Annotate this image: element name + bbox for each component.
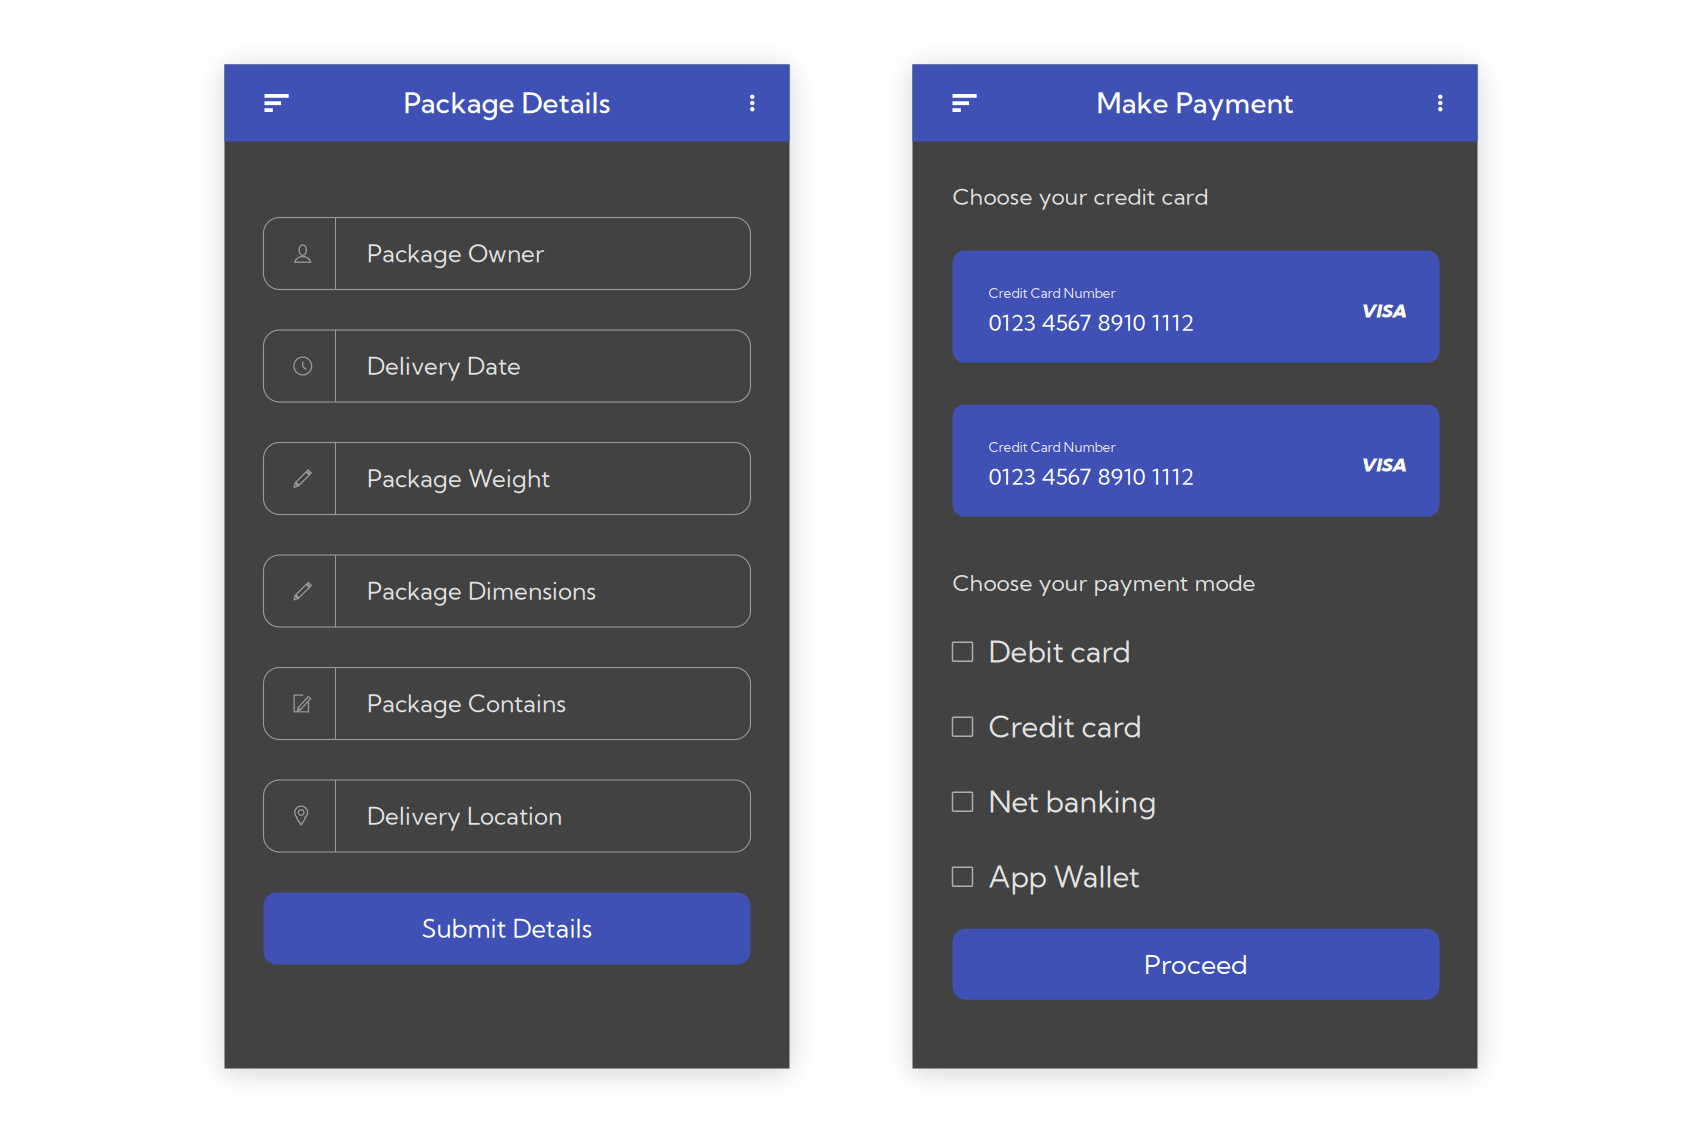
staticText: Package Weight bbox=[367, 464, 550, 493]
staticText: Submit Details bbox=[421, 913, 592, 944]
staticText: Delivery Location bbox=[367, 801, 562, 831]
staticText: Proceed bbox=[1144, 948, 1248, 981]
button[interactable]: Debit card bbox=[952, 632, 1439, 672]
staticText: Package Owner bbox=[367, 239, 544, 268]
staticText: Package Contains bbox=[367, 689, 566, 718]
staticText: Package Dimensions bbox=[367, 576, 596, 606]
staticText: Delivery Date bbox=[367, 351, 521, 381]
button[interactable]: More options bbox=[728, 64, 789, 141]
button[interactable]: Credit Card Number bbox=[952, 251, 1439, 363]
staticText: App Wallet bbox=[988, 858, 1139, 895]
button[interactable]: Package Dimensions bbox=[263, 555, 750, 627]
staticText: 0123 4567 8910 1112 bbox=[988, 462, 1194, 490]
button[interactable]: Package Owner bbox=[263, 217, 750, 289]
staticText: Credit card bbox=[988, 708, 1141, 745]
staticText: Choose your credit card bbox=[952, 182, 1208, 211]
staticText: Credit Card Number bbox=[988, 285, 1115, 301]
button[interactable]: Net banking bbox=[952, 782, 1439, 822]
staticText: VISA bbox=[1360, 453, 1406, 476]
staticText: Make Payment bbox=[1096, 86, 1293, 120]
button[interactable]: Menu bbox=[912, 64, 997, 141]
button[interactable]: Credit card bbox=[952, 707, 1439, 747]
staticText: 0123 4567 8910 1112 bbox=[988, 308, 1194, 336]
button[interactable]: Menu bbox=[224, 64, 309, 141]
button[interactable]: Submit Details bbox=[263, 892, 750, 964]
staticText: Choose your payment mode bbox=[952, 569, 1255, 597]
button[interactable]: Package Contains bbox=[263, 667, 750, 739]
button[interactable]: More options bbox=[1416, 64, 1477, 141]
staticText: Package Details bbox=[403, 86, 610, 120]
staticText: Credit Card Number bbox=[988, 439, 1115, 455]
staticText: Net banking bbox=[988, 783, 1156, 820]
button[interactable]: Credit Card Number bbox=[952, 405, 1439, 517]
button[interactable]: Delivery Location bbox=[263, 780, 750, 852]
button[interactable]: Delivery Date bbox=[263, 330, 750, 402]
button[interactable]: Package Weight bbox=[263, 442, 750, 514]
staticText: Debit card bbox=[988, 633, 1130, 670]
staticText: VISA bbox=[1360, 299, 1406, 322]
button[interactable]: Proceed bbox=[952, 929, 1439, 1000]
button[interactable]: App Wallet bbox=[952, 857, 1439, 897]
